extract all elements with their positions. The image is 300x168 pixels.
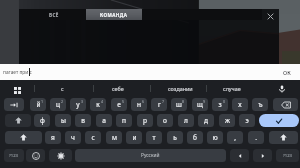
staticText: 8 [182,99,185,104]
button[interactable]: щ [192,98,208,111]
button[interactable]: э [239,114,255,127]
staticText: ю [212,133,218,142]
staticText: о [163,116,167,125]
staticText: я [51,133,55,142]
button[interactable]: случае [208,81,256,96]
staticText: щ [197,100,203,109]
staticText: себе [112,85,124,92]
staticText: ы [61,116,66,125]
button[interactable]: д [198,114,214,127]
staticText: м [112,133,117,142]
staticText: 7 [162,99,165,104]
staticText: ?123 [9,153,19,159]
button[interactable]: Move cursor right [253,149,272,162]
staticText: с [61,85,64,92]
button[interactable]: Symbols [276,149,299,162]
button[interactable]: я [45,131,61,144]
staticText: п [122,116,126,125]
button[interactable]: ОК [277,64,300,80]
button[interactable]: о [157,114,173,127]
button[interactable]: ц [50,98,66,111]
staticText: , [234,133,236,142]
button[interactable]: в [75,114,91,127]
button[interactable]: Space [75,149,226,162]
button[interactable]: ы [55,114,71,127]
button[interactable]: й [30,98,46,111]
button[interactable]: п [116,114,132,127]
button[interactable]: л [178,114,194,127]
staticText: создании [168,85,193,92]
button[interactable]: Settings [49,149,72,162]
staticText: ь [173,133,177,142]
staticText: 6 [142,99,145,104]
button[interactable]: с [85,131,101,144]
button[interactable]: т [146,131,162,144]
button[interactable]: Backspace [273,98,298,111]
staticText: с [91,133,95,142]
button[interactable]: м [106,131,122,144]
staticText: т [152,133,156,142]
staticText: . [255,133,257,142]
button[interactable]: ш [171,98,187,111]
button[interactable]: Shift [269,131,298,144]
staticText: д [204,116,208,125]
staticText: а [102,116,106,125]
button[interactable]: ж [219,114,235,127]
button[interactable]: Symbols [4,149,24,162]
button[interactable]: , [227,131,243,144]
staticText: з [218,100,222,109]
button[interactable]: ч [65,131,81,144]
staticText: в [81,116,85,125]
staticText: ф [40,116,45,125]
button[interactable]: ВСЁ [21,9,86,20]
button[interactable]: Close [262,8,279,25]
staticText: ш [176,100,182,109]
button[interactable]: з [212,98,228,111]
button[interactable]: н [131,98,147,111]
staticText: ВСЁ [49,12,59,18]
staticText: ъ [258,100,263,109]
button[interactable]: КОМАНДА [86,9,142,20]
button[interactable]: к [90,98,106,111]
button[interactable]: а [96,114,112,127]
button[interactable]: х [232,98,248,111]
button[interactable]: Caps lock [5,114,31,127]
staticText: 5 [122,99,125,104]
button[interactable]: с [38,81,86,96]
button[interactable]: р [137,114,153,127]
button[interactable]: ю [207,131,223,144]
button[interactable]: и [126,131,142,144]
button[interactable]: у [70,98,86,111]
staticText: н [137,100,141,109]
button[interactable]: б [187,131,203,144]
staticText: 1 [41,99,44,104]
staticText: й [36,100,41,109]
button[interactable]: ь [167,131,183,144]
button[interactable]: Enter [259,114,299,127]
button[interactable]: Emoji [26,149,45,162]
staticText: ц [56,100,60,109]
button[interactable]: . [248,131,264,144]
button[interactable]: е [111,98,127,111]
staticText: к [96,100,100,109]
button[interactable]: Move cursor left [230,149,249,162]
staticText: 9 [203,99,206,104]
button[interactable]: Tab [4,98,24,111]
staticText: 0 [223,99,226,104]
staticText: г [158,100,161,109]
staticText: пагает при с [3,69,32,76]
button[interactable]: г [151,98,167,111]
button[interactable]: Shift [5,131,42,144]
staticText: ж [225,116,230,125]
staticText: х [238,100,242,109]
button[interactable]: ъ [252,98,268,111]
button[interactable]: создании [156,81,204,96]
staticText: КОМАНДА [100,12,128,18]
staticText: случае [223,85,241,92]
button[interactable]: ф [34,114,50,127]
button[interactable]: себе [94,81,142,96]
staticText: 2 [61,99,64,104]
button[interactable]: Clipboard [8,81,26,99]
staticText: и [132,133,137,142]
button[interactable]: Voice input [273,80,291,98]
